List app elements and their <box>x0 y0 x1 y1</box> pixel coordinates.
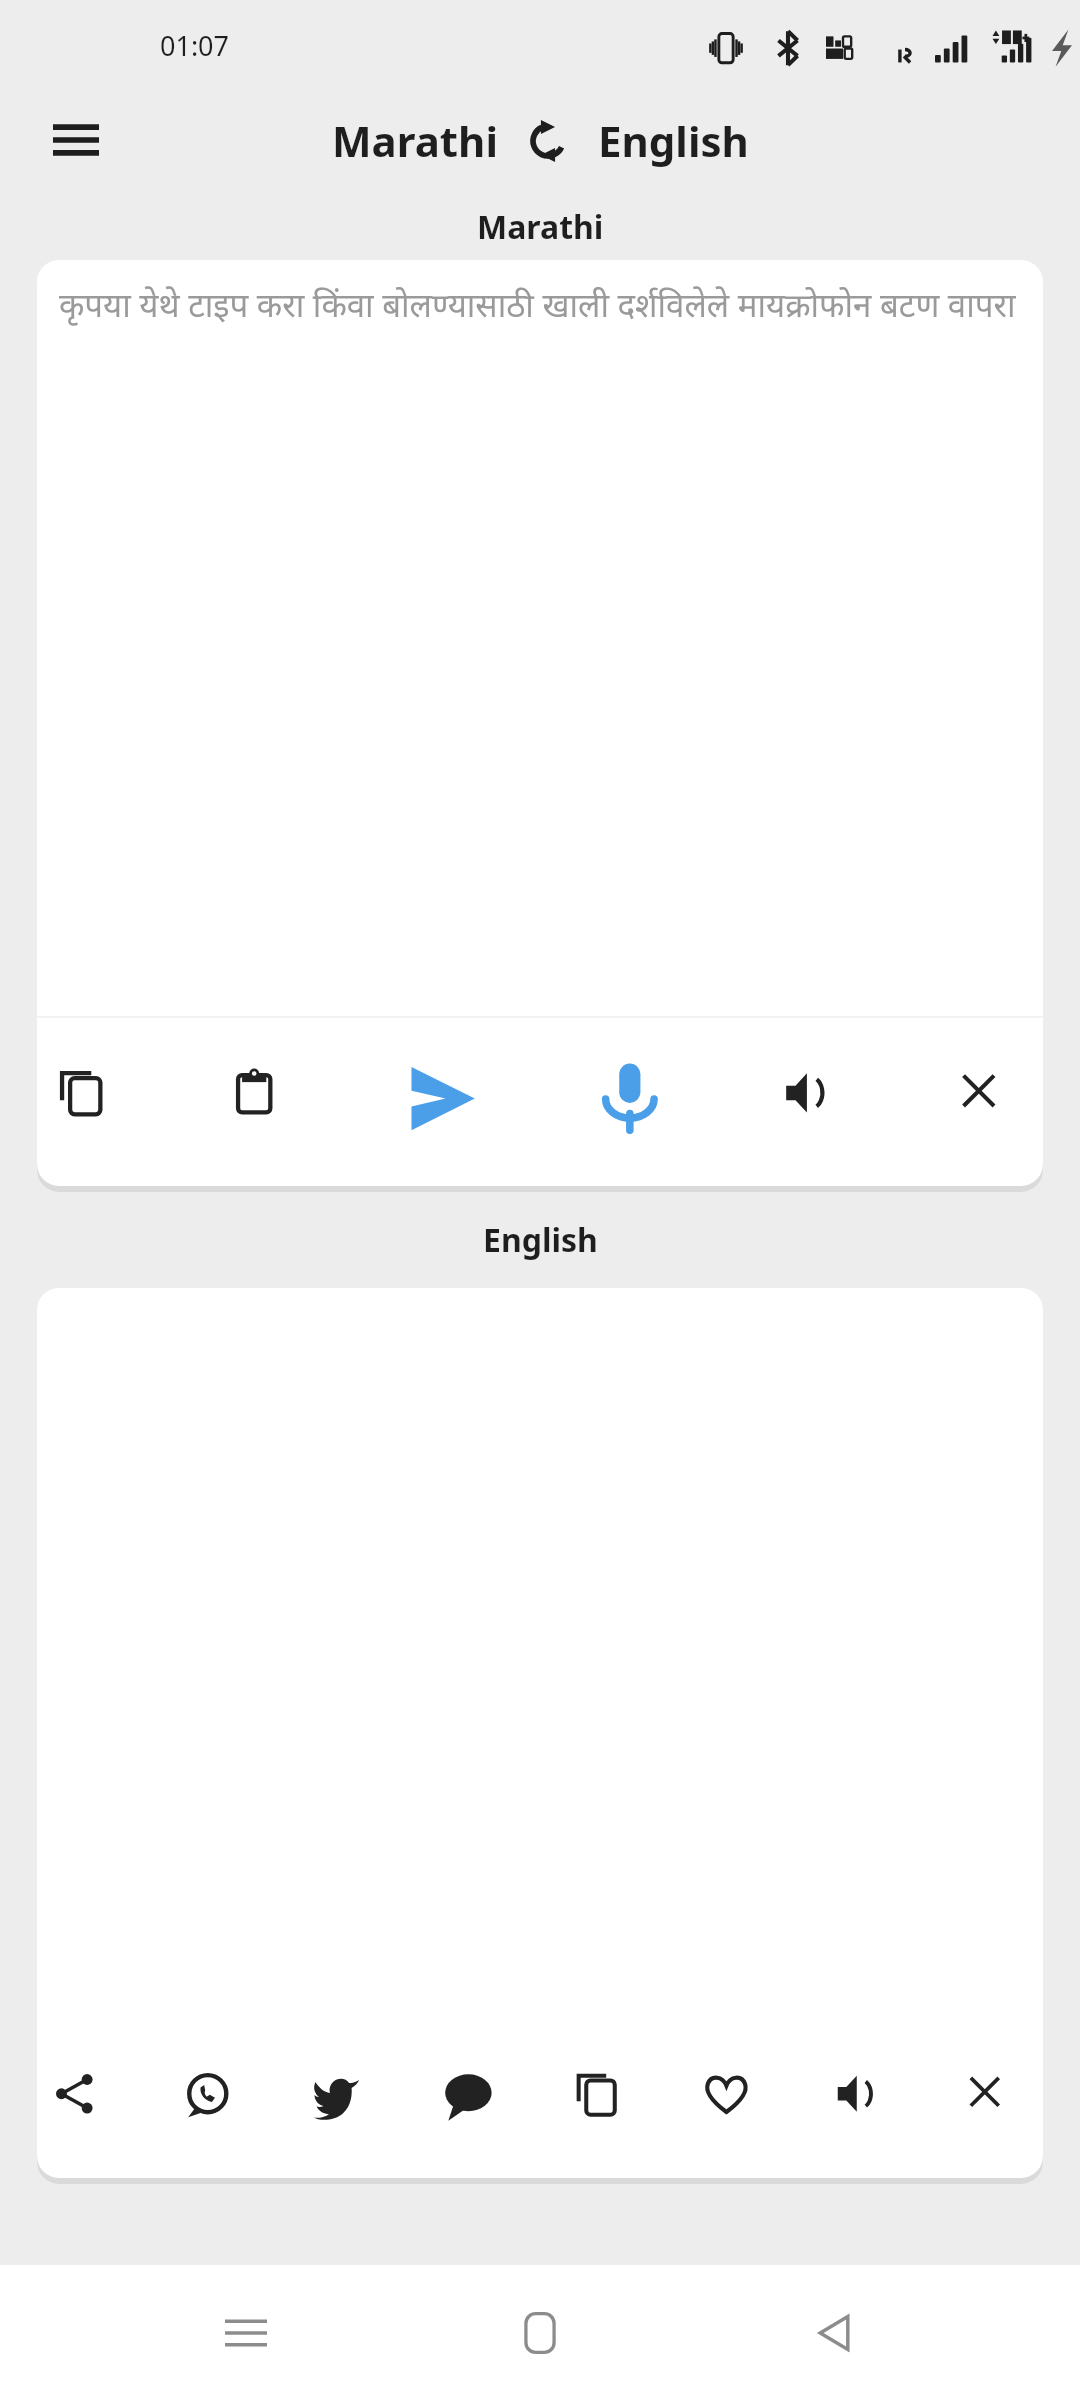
button[interactable]: Swap languages <box>522 115 574 167</box>
staticText: 01:07 <box>160 27 230 64</box>
button[interactable]: Speak <box>592 1059 678 1145</box>
button[interactable]: Menu <box>40 104 112 176</box>
button[interactable]: Listen <box>833 2070 899 2136</box>
button[interactable]: Paste <box>229 1067 299 1137</box>
button[interactable]: WhatsApp <box>181 2070 247 2136</box>
staticText: कृपया येथे टाइप करा किंवा बोलण्यासाठी खा… <box>59 282 1016 327</box>
button[interactable]: Favourite <box>702 2070 768 2136</box>
button[interactable]: Twitter <box>312 2070 378 2136</box>
button[interactable]: Copy <box>572 2070 638 2136</box>
button[interactable]: Clear <box>963 2070 1029 2136</box>
button[interactable]: कृपया येथे टाइप करा किंवा बोलण्यासाठी खा… <box>37 260 1043 1016</box>
button[interactable]: Listen <box>781 1067 851 1137</box>
button[interactable]: Copy <box>55 1067 125 1137</box>
button[interactable]: English <box>598 112 749 169</box>
staticText: English <box>483 1218 598 1262</box>
button[interactable]: Send <box>402 1059 488 1145</box>
button[interactable]: Clear <box>955 1067 1025 1137</box>
button[interactable]: SMS <box>442 2070 508 2136</box>
staticText: Marathi <box>477 205 604 249</box>
button[interactable]: Home <box>492 2285 588 2381</box>
button[interactable]: Share <box>51 2070 117 2136</box>
button[interactable]: Marathi <box>332 112 498 169</box>
button[interactable]: Recents <box>198 2285 294 2381</box>
button[interactable]: Back <box>786 2285 882 2381</box>
